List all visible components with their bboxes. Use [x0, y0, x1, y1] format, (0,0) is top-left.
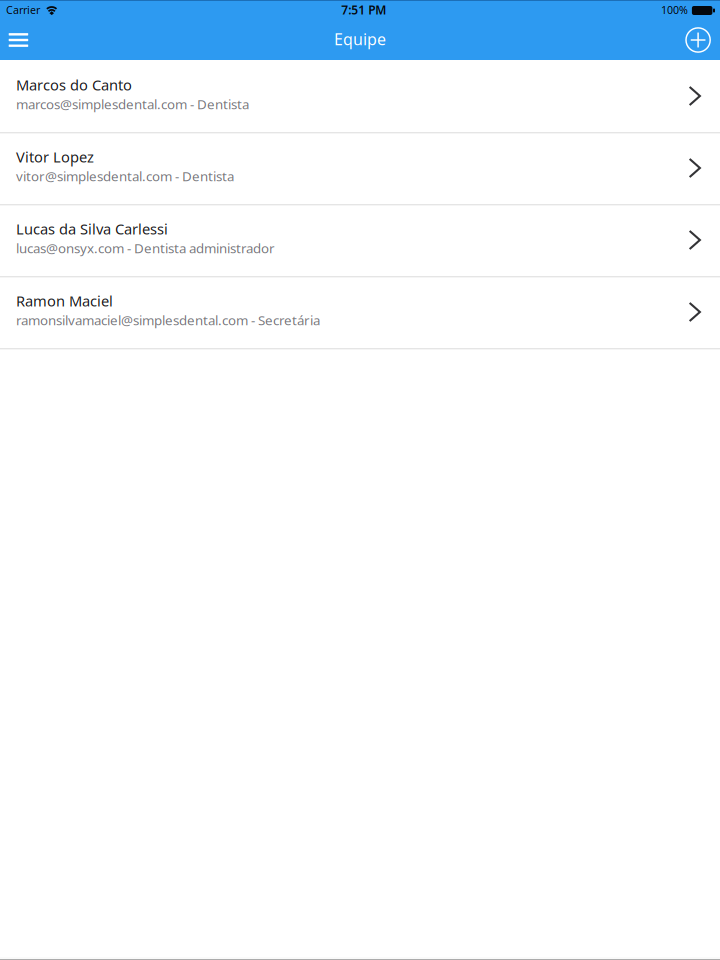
staticText: Marcos do Canto: [16, 75, 132, 95]
staticText: 100%: [661, 3, 688, 17]
button[interactable]: Vitor Lopez: [0, 132, 720, 204]
staticText: Vitor Lopez: [16, 147, 94, 167]
staticText: ramonsilvamaciel@simplesdental.com - Sec…: [16, 311, 320, 329]
staticText: lucas@onsyx.com - Dentista administrador: [16, 239, 275, 257]
button[interactable]: Ramon Maciel: [0, 276, 720, 348]
button[interactable]: Marcos do Canto: [0, 60, 720, 132]
staticText: Carrier: [6, 3, 40, 17]
staticText: Ramon Maciel: [16, 291, 113, 311]
staticText: marcos@simplesdental.com - Dentista: [16, 95, 249, 113]
button[interactable]: Add: [667, 20, 720, 60]
staticText: 7:51 PM: [341, 2, 386, 18]
button[interactable]: Lucas da Silva Carlessi: [0, 204, 720, 276]
button[interactable]: Menu: [0, 20, 53, 60]
staticText: Lucas da Silva Carlessi: [16, 219, 168, 239]
staticText: Equipe: [334, 28, 386, 50]
staticText: vitor@simplesdental.com - Dentista: [16, 167, 234, 185]
